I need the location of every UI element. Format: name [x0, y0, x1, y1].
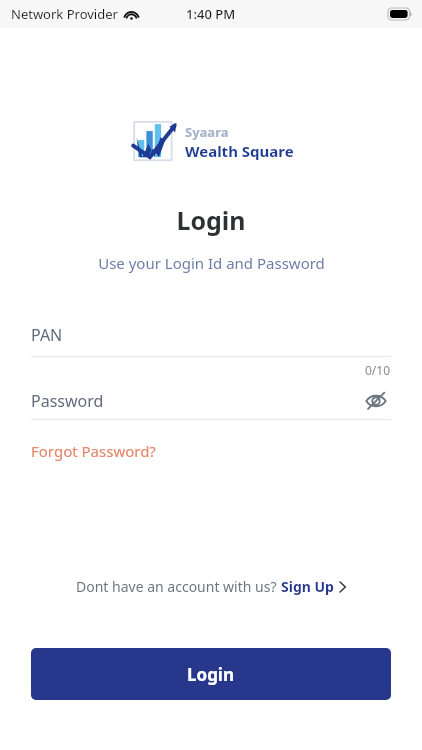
staticText: Sign Up — [281, 577, 334, 596]
staticText: Password — [31, 390, 104, 412]
staticText: Login — [176, 203, 246, 237]
staticText: Syaara — [185, 123, 229, 141]
staticText: 1:40 PM — [186, 5, 236, 23]
staticText: 0/10 — [365, 362, 391, 378]
staticText: PAN — [31, 324, 63, 346]
button[interactable]: Password — [31, 382, 391, 419]
staticText: Login — [187, 663, 235, 686]
staticText: Dont have an account with us? — [76, 577, 281, 596]
staticText: Forgot Password? — [31, 441, 156, 461]
button[interactable]: PAN — [31, 314, 391, 356]
button[interactable]: Forgot Password? — [31, 441, 156, 461]
button[interactable]: Dont have an account with us? — [76, 577, 346, 596]
staticText: Use your Login Id and Password — [98, 253, 325, 273]
staticText: Network Provider — [11, 5, 118, 23]
staticText: Wealth Square — [185, 141, 294, 161]
button[interactable]: Show password — [361, 386, 391, 416]
button[interactable]: Login — [31, 648, 391, 700]
